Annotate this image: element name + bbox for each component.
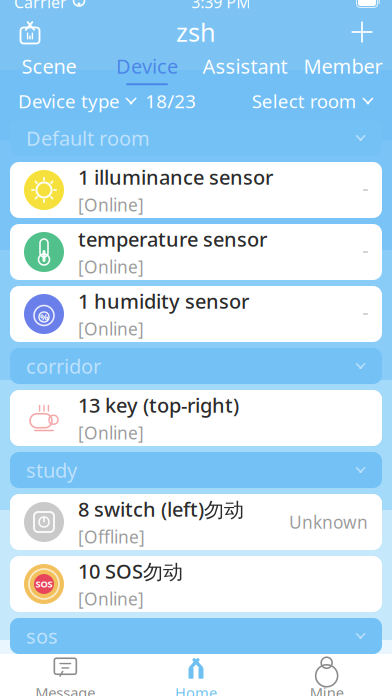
staticText: 8 switch (left)勿动 [78, 496, 244, 522]
staticText: [Online] [78, 255, 144, 278]
button[interactable]: Message [0, 655, 131, 696]
staticText: Home [175, 683, 217, 696]
button[interactable]: Scene [0, 52, 98, 86]
staticText: Message [35, 683, 95, 696]
staticText: 1 illuminance sensor [78, 164, 273, 190]
button[interactable]: Select room [252, 83, 374, 119]
button[interactable]: Add device [340, 13, 384, 51]
button[interactable]: 8 switch (left)勿动 [10, 494, 382, 550]
staticText: Unknown [289, 510, 368, 533]
staticText: 13 key (top-right) [78, 392, 239, 418]
staticText: SOS [35, 578, 52, 590]
staticText: study [26, 457, 77, 483]
button[interactable]: sos [10, 618, 382, 654]
staticText: Assistant [202, 53, 287, 79]
staticText: Member [303, 53, 382, 79]
staticText: 3:39 PM [191, 0, 251, 13]
button[interactable]: Home [131, 655, 261, 696]
button[interactable]: temperature sensor [10, 224, 382, 280]
button[interactable]: study [10, 452, 382, 488]
staticText: 1 humidity sensor [78, 288, 249, 314]
staticText: zsh [176, 15, 216, 49]
staticText: Scene [21, 53, 76, 79]
staticText: 18/23 [145, 89, 196, 113]
staticText: [Online] [78, 421, 144, 444]
button[interactable]: Device type [18, 83, 196, 119]
staticText: Mine [310, 683, 344, 696]
staticText: % [40, 311, 48, 323]
button[interactable]: Device [98, 52, 196, 86]
staticText: Select room [252, 89, 356, 113]
staticText: [Online] [78, 317, 144, 340]
staticText: sos [26, 623, 58, 649]
staticText: [Online] [78, 587, 144, 610]
button[interactable]: 13 key (top-right) [10, 390, 382, 446]
staticText: temperature sensor [78, 226, 267, 252]
button[interactable]: corridor [10, 348, 382, 384]
button[interactable]: Assistant [196, 52, 294, 86]
staticText: [Online] [78, 193, 144, 216]
button[interactable]: SOS [10, 556, 382, 612]
staticText: 10 SOS勿动 [78, 558, 183, 584]
staticText: [Offline] [78, 525, 145, 548]
button[interactable]: Default room [10, 120, 382, 156]
button[interactable]: Member [294, 52, 392, 86]
button[interactable]: Home settings [8, 13, 52, 51]
staticText: Default room [26, 125, 150, 151]
button[interactable]: % [10, 286, 382, 342]
button[interactable]: Mine [261, 655, 392, 696]
staticText: Device type [18, 89, 120, 113]
button[interactable]: 1 illuminance sensor [10, 162, 382, 218]
staticText: corridor [26, 353, 101, 379]
staticText: Carrier [14, 0, 67, 13]
staticText: Device [116, 53, 178, 79]
